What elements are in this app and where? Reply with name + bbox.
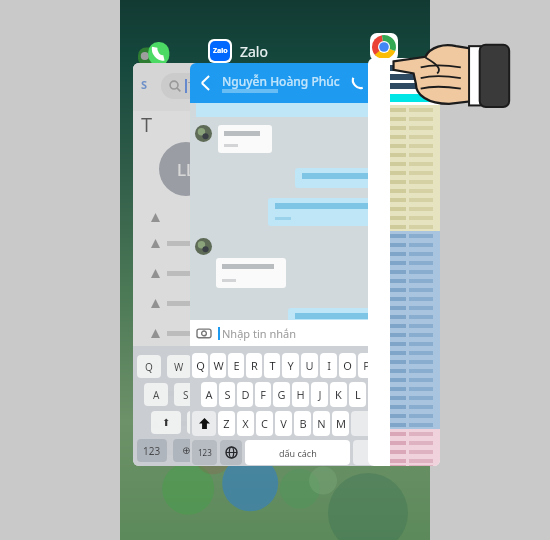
staticText: T <box>269 358 276 373</box>
button[interactable]: O <box>339 353 356 378</box>
button[interactable]: N <box>313 411 330 436</box>
button[interactable] <box>151 348 303 378</box>
button[interactable]: Change language <box>220 440 242 465</box>
staticText: A <box>205 387 213 402</box>
staticText: N <box>317 416 326 431</box>
button[interactable]: S <box>133 63 303 466</box>
button[interactable] <box>151 258 303 288</box>
button[interactable]: U <box>301 353 318 378</box>
button[interactable] <box>151 378 303 408</box>
button[interactable]: E <box>197 355 221 378</box>
button[interactable]: Enter <box>353 440 375 465</box>
button[interactable]: X <box>237 411 254 436</box>
button[interactable]: Y <box>282 353 299 378</box>
staticText: O <box>343 358 352 373</box>
staticText: H <box>296 387 305 402</box>
button[interactable]: Zalo <box>208 38 268 64</box>
staticText: X <box>226 416 232 430</box>
staticText: S <box>183 388 189 402</box>
staticText: T <box>141 111 153 138</box>
button[interactable]: G <box>273 382 290 407</box>
staticText: L <box>355 387 361 402</box>
button[interactable]: T <box>264 353 280 378</box>
button[interactable]: F <box>255 382 271 407</box>
staticText: Nhập tin nhắn <box>222 326 296 341</box>
staticText: Nguyễn Hoàng Phúc <box>222 73 340 89</box>
button[interactable]: P <box>358 353 375 378</box>
button[interactable]: B <box>294 411 311 436</box>
staticText: dấu cách <box>279 447 317 459</box>
staticText: J <box>318 387 322 402</box>
staticText: F <box>260 387 266 402</box>
button[interactable]: Backspace <box>351 411 375 436</box>
button[interactable]: Chrome <box>370 33 398 61</box>
staticText: D <box>241 387 250 402</box>
staticText: K <box>335 387 342 402</box>
staticText: Tìm kiếm <box>188 79 231 93</box>
button[interactable]: L <box>349 382 366 407</box>
button[interactable]: A <box>144 383 168 406</box>
button[interactable]: S <box>219 382 235 407</box>
button[interactable]: Shift <box>192 411 216 436</box>
button[interactable]: ⊕ <box>173 439 199 462</box>
staticText: ⬆ <box>162 417 171 429</box>
button[interactable]: X <box>217 411 241 434</box>
staticText: Y <box>287 358 294 373</box>
button[interactable]: ⬆ <box>151 411 181 434</box>
button[interactable]: C <box>256 411 273 436</box>
button[interactable]: V <box>275 411 292 436</box>
button[interactable]: W <box>167 355 191 378</box>
button[interactable]: S <box>174 383 198 406</box>
button[interactable] <box>151 438 303 466</box>
button[interactable]: R <box>246 353 262 378</box>
staticText: 123 <box>198 447 212 458</box>
staticText: W <box>174 360 184 374</box>
button[interactable]: D <box>204 383 228 406</box>
staticText: S <box>224 387 231 402</box>
other: Camera <box>197 326 211 340</box>
button[interactable]: H <box>292 382 309 407</box>
button[interactable]: E <box>228 353 244 378</box>
button[interactable]: Back <box>190 63 377 466</box>
staticText: X <box>242 416 249 431</box>
staticText: ⊕ <box>182 445 191 457</box>
button[interactable] <box>151 228 303 258</box>
button[interactable] <box>368 58 440 466</box>
staticText: A <box>153 388 160 402</box>
staticText: C <box>261 416 268 431</box>
button[interactable]: 123 <box>192 440 217 465</box>
staticText: Zalo <box>213 46 228 56</box>
button[interactable]: J <box>311 382 328 407</box>
button[interactable]: dấu cách <box>245 440 350 465</box>
staticText: E <box>233 358 240 373</box>
button[interactable]: 123 <box>137 439 167 462</box>
button[interactable]: K <box>330 382 347 407</box>
staticText: G <box>277 387 286 402</box>
button[interactable]: Z <box>187 411 211 434</box>
staticText: 123 <box>143 444 161 458</box>
button[interactable]: D <box>237 382 253 407</box>
other: Back <box>199 76 213 90</box>
staticText: U <box>305 358 314 373</box>
button[interactable] <box>151 408 303 438</box>
staticText: S <box>141 77 148 92</box>
button[interactable]: Q <box>192 353 208 378</box>
staticText: R <box>251 358 258 373</box>
button[interactable]: A <box>201 382 217 407</box>
staticText: Z <box>196 416 202 430</box>
staticText: Zalo <box>240 42 268 61</box>
button[interactable]: Q <box>137 355 161 378</box>
staticText: Z <box>223 416 230 431</box>
button[interactable]: Z <box>218 411 235 436</box>
button[interactable]: Camera <box>190 320 377 346</box>
staticText: V <box>280 416 287 431</box>
button[interactable]: M <box>332 411 349 436</box>
staticText: M <box>336 416 346 431</box>
button[interactable] <box>151 206 303 228</box>
other: Call <box>350 76 365 91</box>
button[interactable] <box>151 288 303 318</box>
button[interactable]: Contacts app <box>136 38 170 72</box>
button[interactable]: W <box>210 353 226 378</box>
button[interactable] <box>151 318 303 348</box>
button[interactable]: I <box>320 353 337 378</box>
